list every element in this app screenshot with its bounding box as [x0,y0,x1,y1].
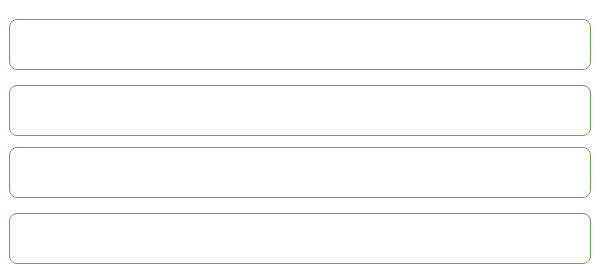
button[interactable]: Item 4 [9,213,591,264]
button[interactable]: Item 2 [9,85,591,136]
button[interactable]: Item 1 [9,19,591,70]
button[interactable]: Item 3 [9,147,591,198]
